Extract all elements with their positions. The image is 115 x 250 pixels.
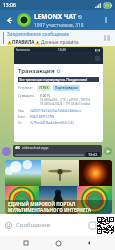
- staticText: 18.048 ba220424 = 791.0434e15ed4a2: [40, 102, 91, 106]
- staticText: Данные правила распростр...: [41, 39, 102, 45]
- staticText: 3c75ee4d73ba4e4eee45cb1c32: [30, 121, 74, 125]
- staticText: УСПЕХ: [39, 86, 49, 90]
- staticText: Подтверждено: [55, 86, 78, 90]
- staticText: МУЛЬТИМЕНТАЛЬНОГО ИНТЕРНЕТА: [8, 207, 91, 213]
- button[interactable]: ЕДИНЫЙ МИРОВОЙ ПОРТАЛ: [5, 160, 112, 214]
- button[interactable]: Group avatar: [17, 13, 31, 27]
- button[interactable]: Back: [83, 237, 95, 249]
- button[interactable]: Recents: [20, 237, 32, 249]
- staticText: 13:42: [88, 152, 98, 157]
- staticText: От: [18, 121, 30, 125]
- staticText: 89421389157798: [30, 115, 55, 119]
- button[interactable]: Forward: [104, 147, 112, 155]
- staticText: 13:06: [3, 2, 16, 9]
- staticText: 1097 участников, 318 онлайн: [34, 22, 100, 29]
- staticText: 4K: [15, 145, 20, 150]
- button[interactable]: lemonx.io: [14, 47, 103, 142]
- staticText: LEMONX ЧАТ: [34, 12, 77, 21]
- staticText: ◧ ▮: [95, 48, 101, 52]
- staticText: 3a09017bb1d237ae1b6b0c2b5bbccc: [30, 109, 82, 113]
- staticText: Результат: [18, 86, 33, 90]
- button[interactable]: Закреплённое сообщение: [0, 30, 115, 46]
- button[interactable]: Back: [3, 14, 15, 26]
- staticText: Блок: [18, 115, 30, 119]
- button[interactable]: Emoji: [3, 220, 14, 231]
- staticText: Суммарно: [18, 94, 40, 98]
- button[interactable]: Attach: [87, 220, 98, 231]
- button[interactable]: Sender avatar: [2, 147, 11, 156]
- staticText: Все транзакции подтверждены. Поздравляем…: [18, 78, 88, 82]
- staticText: 13:40: [58, 48, 66, 52]
- staticText: Транзакция: [18, 67, 55, 75]
- staticText: lemonx.io: [16, 48, 30, 52]
- button[interactable]: LEMONX ЧАТ: [34, 12, 100, 29]
- staticText: ПРАВИЛА: [12, 39, 35, 45]
- button[interactable]: Сообщение: [16, 221, 87, 229]
- button[interactable]: 4K: [13, 145, 102, 157]
- staticText: 0.0015: [40, 94, 50, 98]
- button[interactable]: Home: [52, 237, 64, 249]
- button[interactable]: Pinned messages list: [102, 33, 112, 43]
- staticText: ЕДИНЫЙ МИРОВОЙ ПОРТАЛ: [8, 201, 76, 207]
- staticText: 18.048 ba056 - 2 TX-1 a47901 - 78017a: [40, 98, 91, 102]
- staticText: Хеш: [18, 109, 30, 113]
- button[interactable]: More options: [100, 14, 112, 26]
- staticText: Сообщение: [16, 221, 50, 229]
- staticText: videochat.app: [22, 145, 49, 150]
- staticText: Закреплённое сообщение: [7, 31, 70, 38]
